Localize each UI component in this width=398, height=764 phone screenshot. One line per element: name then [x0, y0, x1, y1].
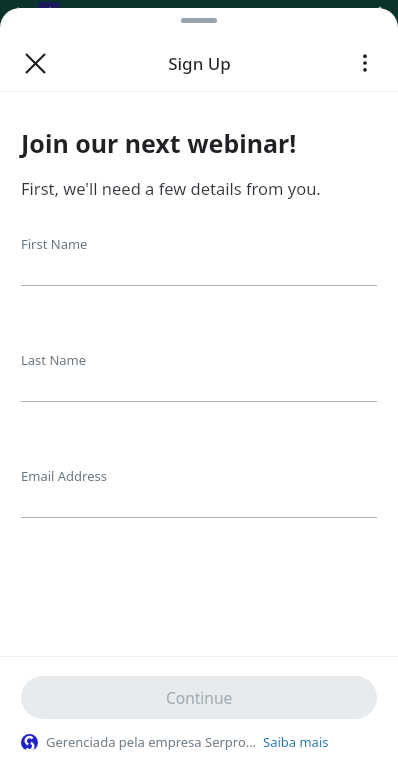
- other: Managed account: [21, 734, 38, 751]
- staticText: Continue: [166, 687, 233, 708]
- button[interactable]: First Name: [21, 235, 377, 286]
- button[interactable]: More options: [344, 42, 386, 84]
- staticText: Saiba mais: [263, 733, 329, 751]
- staticText: Gerenciada pela empresa Serpro…: [46, 733, 257, 751]
- button[interactable]: Continue: [21, 676, 377, 719]
- staticText: Join our next webinar!: [21, 126, 297, 160]
- button[interactable]: Saiba mais: [263, 733, 329, 751]
- staticText: Sign Up: [168, 52, 231, 75]
- staticText: First, we'll need a few details from you…: [21, 177, 321, 199]
- staticText: Email Address: [21, 467, 107, 485]
- button[interactable]: Close: [14, 42, 56, 84]
- staticText: First Name: [21, 235, 88, 253]
- button[interactable]: Last Name: [21, 351, 377, 402]
- staticText: Serpro Test: [70, 2, 160, 25]
- staticText: Last Name: [21, 351, 87, 369]
- button[interactable]: Email Address: [21, 467, 377, 518]
